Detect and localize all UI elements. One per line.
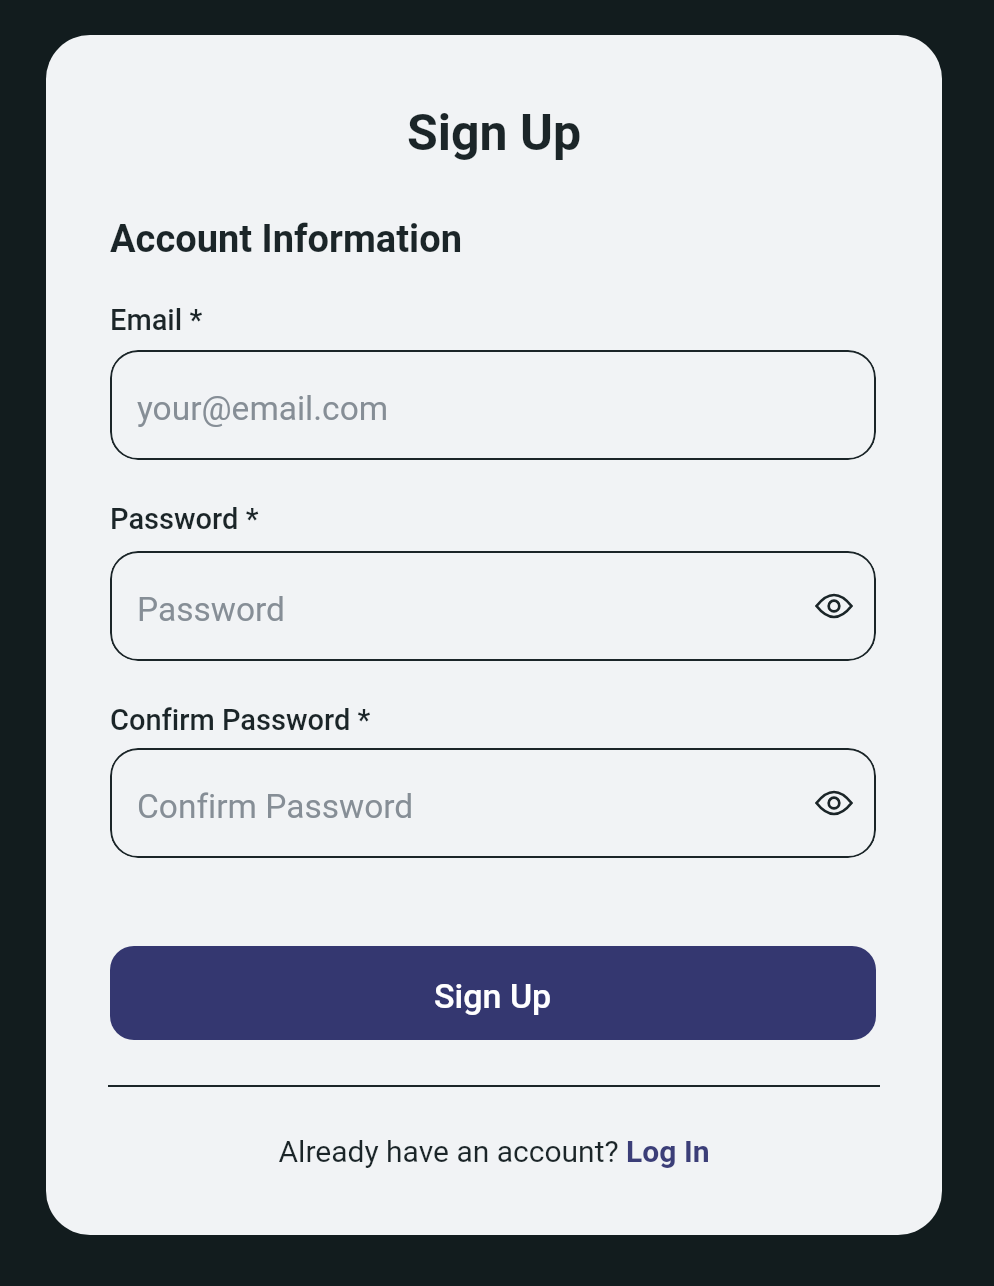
button[interactable]: Sign Up — [110, 946, 876, 1040]
staticText: Account Information — [110, 217, 462, 262]
button[interactable]: Confirm Password — [110, 748, 876, 858]
staticText: Confirm Password — [137, 787, 414, 826]
staticText: Sign Up — [434, 976, 552, 1016]
staticText: Password * — [110, 502, 259, 536]
staticText: Password — [137, 590, 285, 629]
button[interactable] — [815, 790, 853, 816]
button[interactable]: your@email.com — [110, 350, 876, 460]
button[interactable] — [815, 593, 853, 619]
button[interactable]: Password — [110, 551, 876, 661]
staticText: Email * — [110, 303, 203, 337]
staticText: Sign Up — [46, 104, 942, 163]
staticText: your@email.com — [137, 389, 389, 428]
button[interactable]: Already have an account? Log In — [46, 1134, 942, 1169]
staticText: Confirm Password * — [110, 703, 371, 737]
